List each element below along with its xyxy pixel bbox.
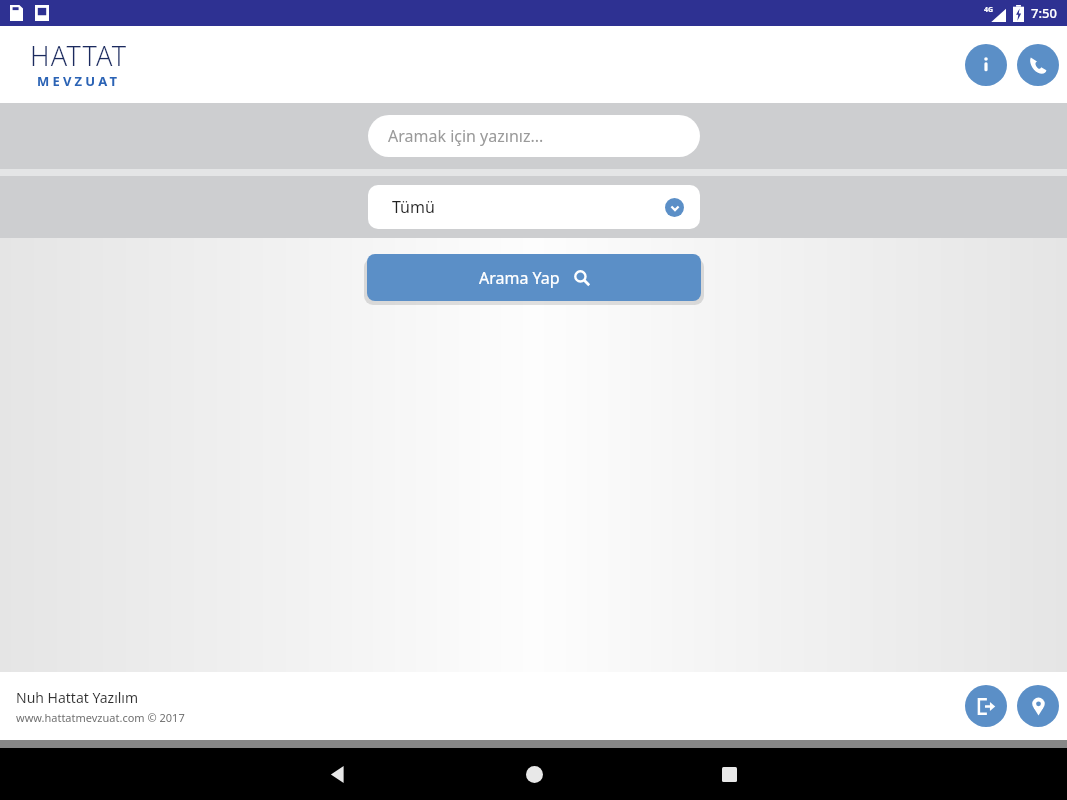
staticText: MEVZUAT bbox=[37, 72, 121, 90]
button[interactable]: Konum bbox=[1017, 685, 1059, 727]
staticText: HATTAT bbox=[30, 37, 128, 74]
button[interactable]: Aramak için yazınız... bbox=[368, 115, 700, 157]
button[interactable]: Telefon bbox=[1017, 44, 1059, 86]
staticText: 4G bbox=[984, 5, 994, 15]
staticText: Aramak için yazınız... bbox=[388, 125, 544, 147]
button[interactable]: Son uygulamalar bbox=[709, 754, 749, 794]
staticText: 7:50 bbox=[1031, 4, 1057, 22]
button[interactable]: Geri bbox=[318, 754, 358, 794]
staticText: Tümü bbox=[392, 196, 435, 218]
button[interactable]: Bilgi bbox=[965, 44, 1007, 86]
staticText: Arama Yap bbox=[479, 267, 560, 289]
button[interactable]: Tümü bbox=[368, 185, 700, 229]
button[interactable]: Çıkış bbox=[965, 685, 1007, 727]
staticText: Nuh Hattat Yazılım bbox=[16, 688, 139, 707]
button[interactable]: Arama Yap bbox=[367, 254, 701, 301]
staticText: www.hattatmevzuat.com © 2017 bbox=[16, 710, 185, 725]
button[interactable]: Ana ekran bbox=[514, 754, 554, 794]
